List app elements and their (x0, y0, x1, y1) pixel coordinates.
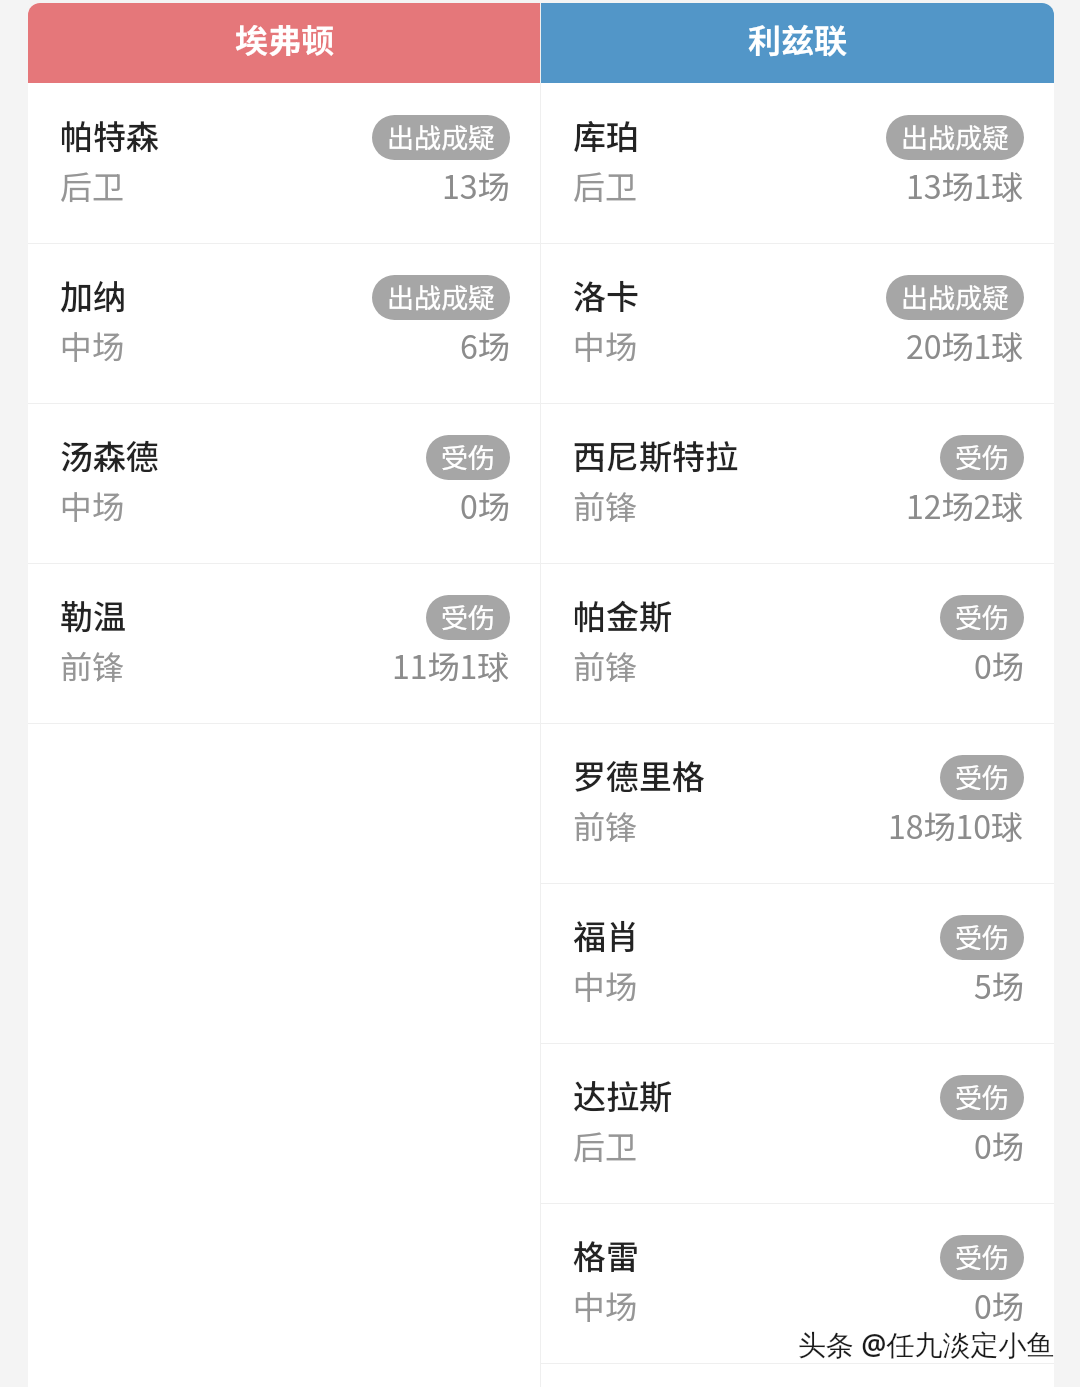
button[interactable]: 库珀 (541, 83, 1054, 243)
staticText: 利兹联 (748, 15, 847, 63)
staticText: 中场 (573, 962, 638, 1008)
staticText: 受伤 (955, 757, 1009, 796)
button[interactable]: 帕特森 (28, 83, 540, 243)
staticText: 中场 (60, 482, 125, 528)
staticText: 汤森德 (60, 431, 159, 476)
staticText: 后卫 (573, 162, 638, 208)
staticText: 中场 (573, 322, 638, 368)
staticText: 加纳 (60, 271, 126, 316)
button[interactable]: 勒温 (28, 563, 540, 723)
staticText: 库珀 (573, 111, 639, 156)
staticText: 0场 (974, 642, 1024, 688)
staticText: 前锋 (573, 802, 638, 848)
staticText: 中场 (573, 1282, 638, 1328)
staticText: 西尼斯特拉 (573, 431, 738, 476)
button[interactable]: 格雷 (541, 1203, 1054, 1363)
staticText: 达拉斯 (573, 1071, 672, 1116)
staticText: 出战成疑 (387, 277, 495, 316)
staticText: 前锋 (573, 482, 638, 528)
button[interactable]: 汤森德 (28, 403, 540, 563)
staticText: 13场 (442, 162, 510, 208)
staticText: 出战成疑 (901, 117, 1009, 156)
button[interactable]: 洛卡 (541, 243, 1054, 403)
staticText: 后卫 (573, 1122, 638, 1168)
staticText: 受伤 (955, 917, 1009, 956)
button[interactable]: 帕金斯 (541, 563, 1054, 723)
button[interactable]: 西尼斯特拉 (541, 403, 1054, 563)
staticText: 6场 (460, 322, 510, 368)
staticText: 埃弗顿 (235, 15, 334, 63)
staticText: 5场 (974, 962, 1024, 1008)
button[interactable]: 利兹联 (541, 3, 1054, 83)
staticText: 0场 (974, 1282, 1024, 1328)
staticText: 帕特森 (60, 111, 159, 156)
staticText: 帕金斯 (573, 591, 672, 636)
button[interactable]: 达拉斯 (541, 1043, 1054, 1203)
button[interactable]: 埃弗顿 (28, 3, 540, 83)
staticText: 罗德里格 (573, 751, 705, 796)
staticText: 出战成疑 (901, 277, 1009, 316)
staticText: 头条 @任九淡定小鱼 (798, 1325, 1055, 1363)
staticText: 受伤 (955, 597, 1009, 636)
button[interactable]: 罗德里格 (541, 723, 1054, 883)
staticText: 前锋 (573, 642, 638, 688)
staticText: 18场10球 (888, 802, 1024, 848)
staticText: 福肖 (573, 911, 639, 956)
staticText: 受伤 (955, 437, 1009, 476)
staticText: 洛卡 (573, 271, 639, 316)
staticText: 0场 (974, 1122, 1024, 1168)
staticText: 勒温 (60, 591, 126, 636)
button[interactable]: 福肖 (541, 883, 1054, 1043)
staticText: 头条 @任九淡定小鱼 (796, 1323, 1053, 1361)
staticText: 11场1球 (392, 642, 510, 688)
staticText: 出战成疑 (387, 117, 495, 156)
staticText: 受伤 (441, 437, 495, 476)
staticText: 0场 (460, 482, 510, 528)
staticText: 20场1球 (906, 322, 1024, 368)
staticText: 受伤 (955, 1237, 1009, 1276)
staticText: 后卫 (60, 162, 125, 208)
staticText: 格雷 (573, 1231, 639, 1276)
staticText: 受伤 (955, 1077, 1009, 1116)
staticText: 13场1球 (906, 162, 1024, 208)
button[interactable]: 加纳 (28, 243, 540, 403)
staticText: 中场 (60, 322, 125, 368)
staticText: 12场2球 (906, 482, 1024, 528)
staticText: 前锋 (60, 642, 125, 688)
staticText: 受伤 (441, 597, 495, 636)
